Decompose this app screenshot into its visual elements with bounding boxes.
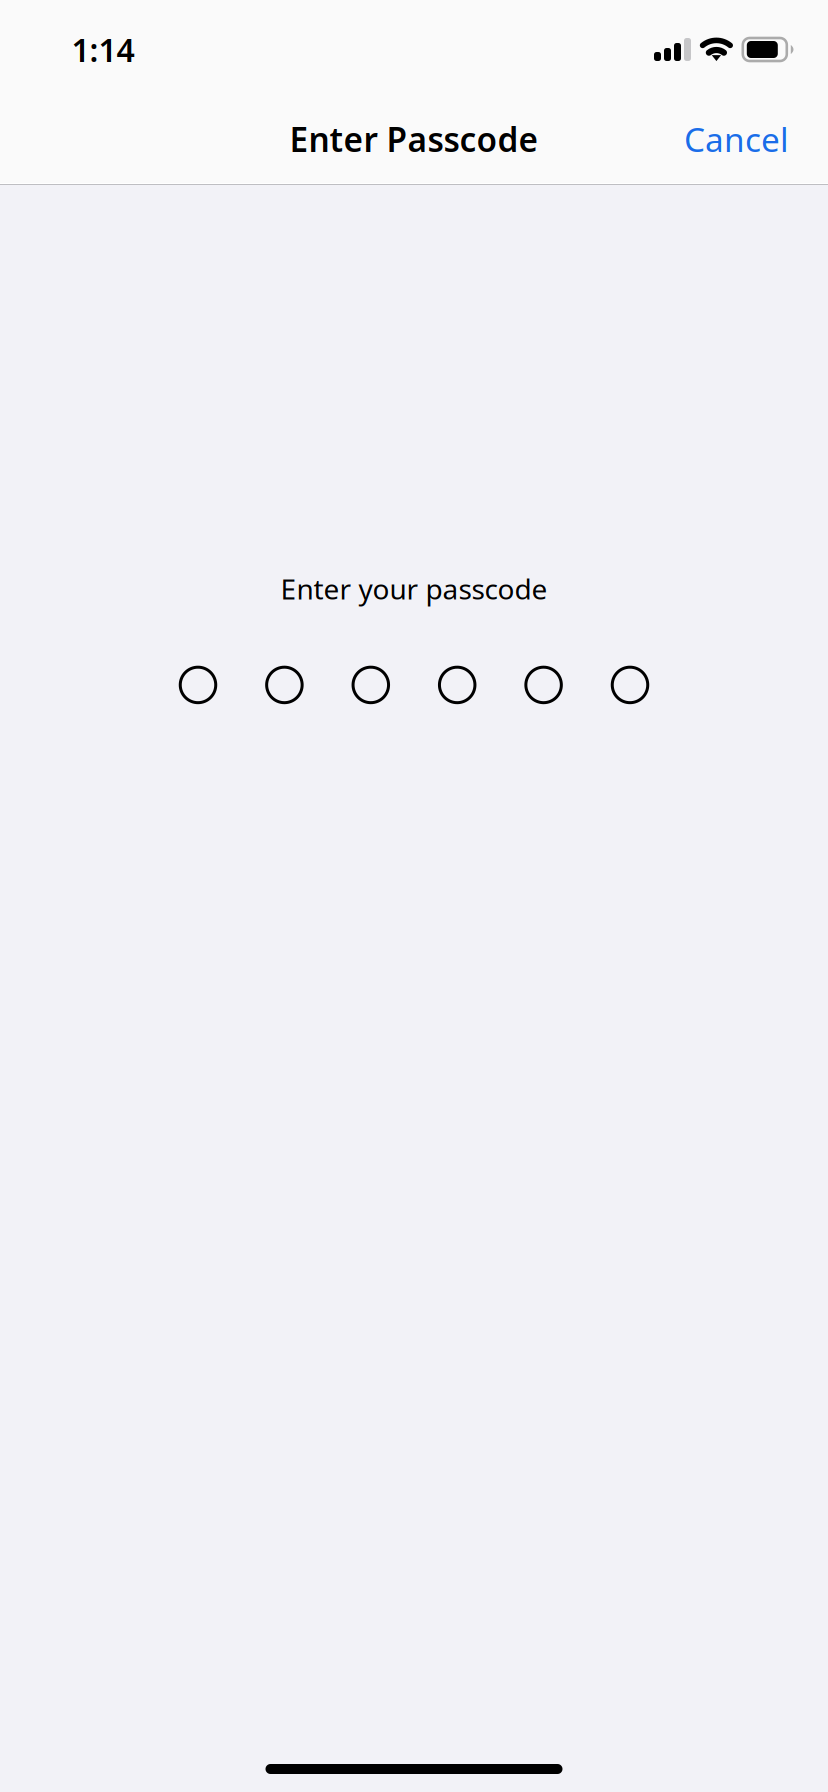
staticText: Enter Passcode — [289, 117, 538, 161]
button[interactable]: Cancel — [672, 103, 801, 179]
staticText: Enter your passcode — [280, 570, 547, 607]
staticText: 1:14 — [71, 28, 134, 71]
staticText: Cancel — [684, 117, 789, 161]
